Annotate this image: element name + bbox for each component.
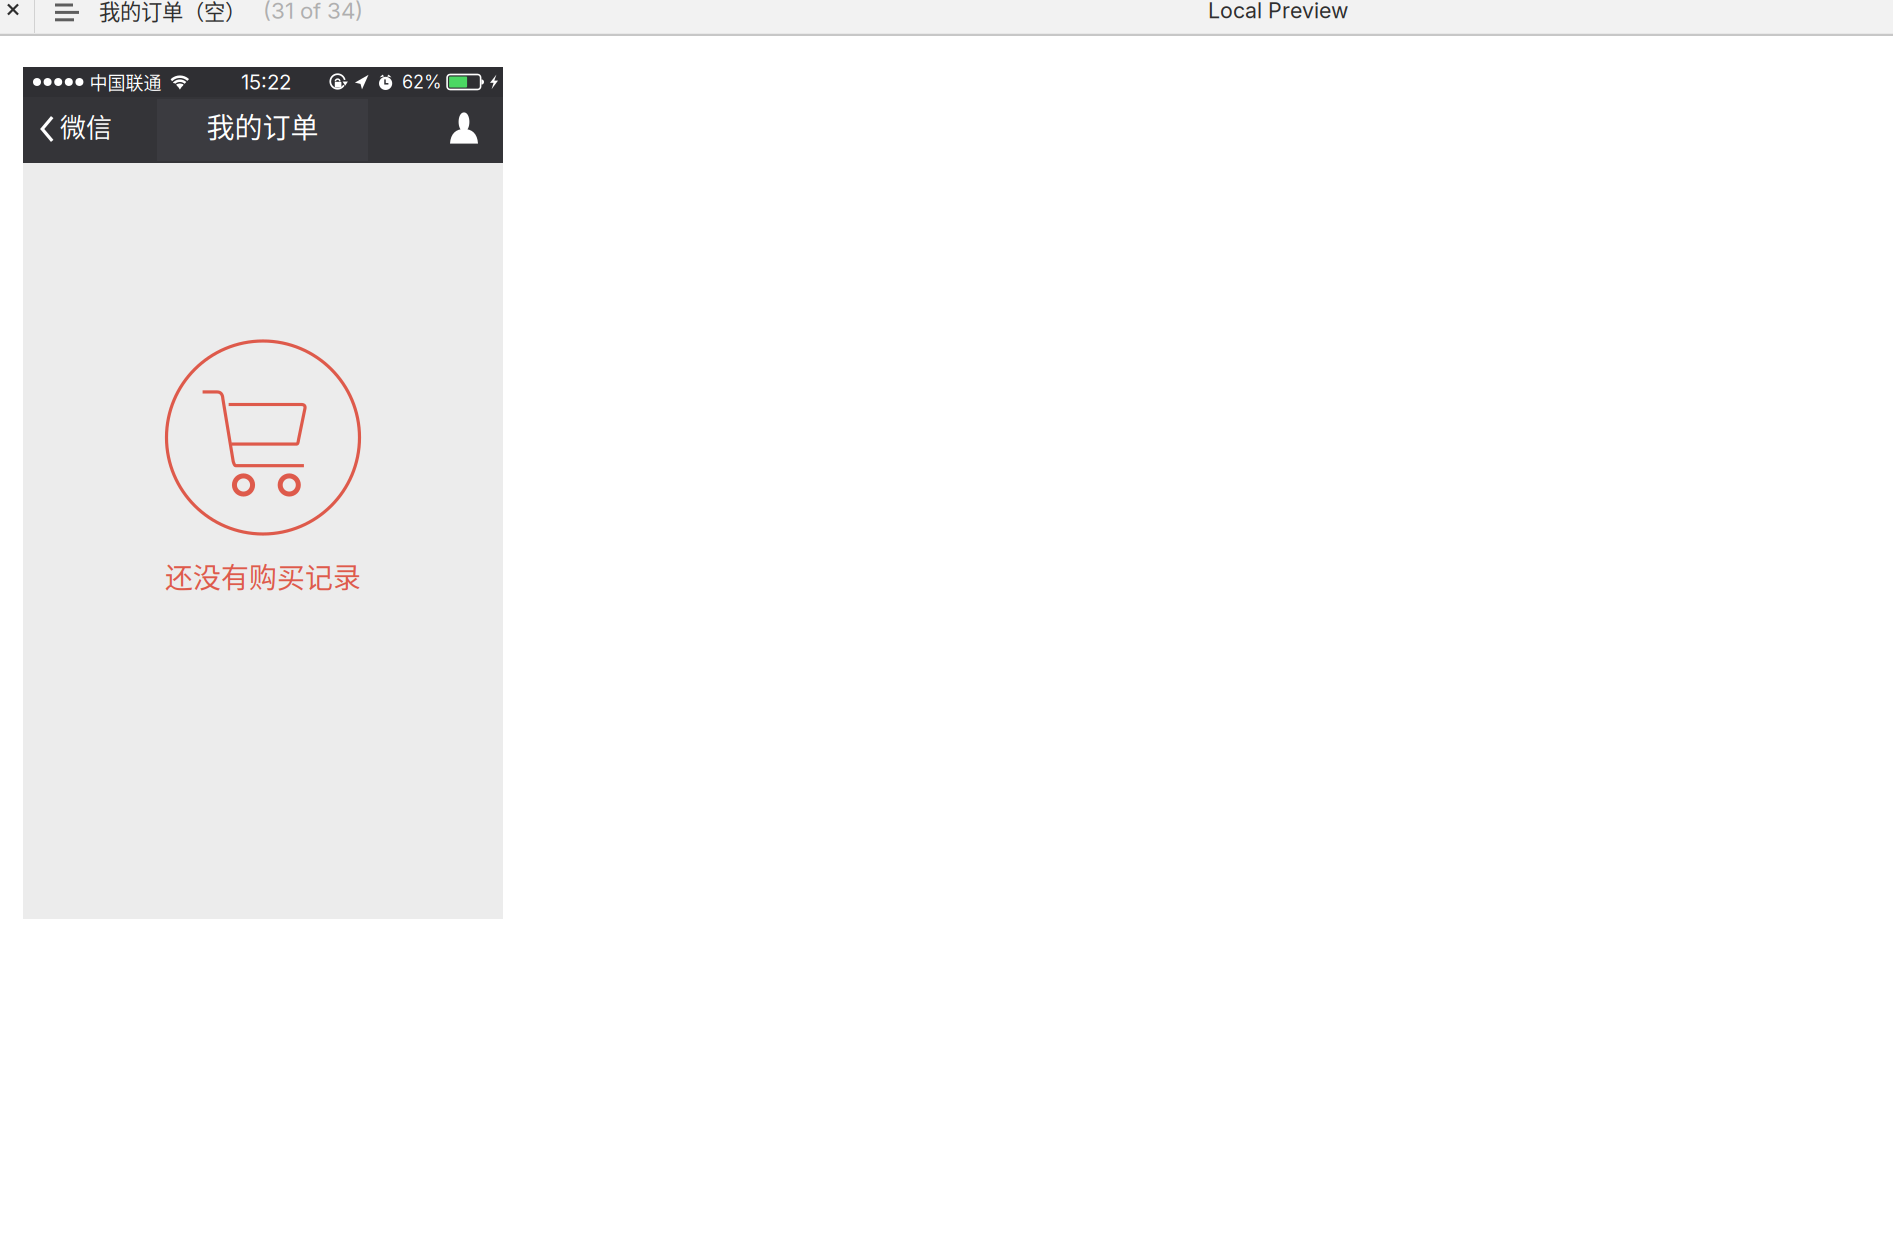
staticText: 微信 (60, 107, 112, 145)
button[interactable]: Toggle outline (35, 0, 99, 33)
staticText: 我的订单 (206, 106, 318, 146)
staticText: 我的订单（空） (99, 0, 246, 26)
staticText: Local Preview (1208, 0, 1348, 23)
staticText: (31 of 34) (263, 0, 363, 24)
staticText: 15:22 (241, 70, 291, 94)
staticText: 还没有购买记录 (165, 556, 361, 596)
button[interactable]: 微信 (23, 97, 157, 163)
staticText: 62% (402, 71, 442, 93)
button[interactable]: Close (0, 0, 34, 33)
staticText: 中国联通 (89, 69, 161, 95)
button[interactable]: Account (368, 97, 503, 163)
